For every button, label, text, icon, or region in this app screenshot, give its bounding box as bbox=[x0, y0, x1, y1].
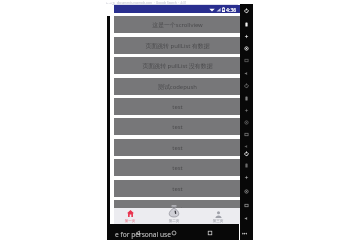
button[interactable]: Rotate left bbox=[244, 46, 249, 51]
staticText: test bbox=[172, 144, 183, 152]
button[interactable]: Snapshots bbox=[244, 175, 249, 180]
button[interactable]: test bbox=[114, 200, 240, 208]
staticText: 测试codepush bbox=[158, 83, 197, 91]
button[interactable]: 第一页 bbox=[120, 204, 140, 224]
staticText: 页面跳转 pullList 有数据 bbox=[145, 42, 210, 50]
button[interactable]: Fold bbox=[244, 120, 249, 125]
button[interactable]: Volume down bbox=[244, 34, 249, 39]
button[interactable]: Volume up bbox=[244, 22, 249, 27]
button[interactable]: Back bbox=[244, 83, 249, 88]
button[interactable]: Settings bbox=[244, 163, 249, 168]
button[interactable]: 这是一个scrollview bbox=[114, 16, 240, 33]
staticText: test bbox=[172, 185, 183, 193]
button[interactable]: Home bbox=[170, 229, 178, 237]
staticText: 4:36 bbox=[226, 6, 237, 13]
staticText: 第二页 bbox=[166, 219, 182, 223]
button[interactable]: 页面跳转 pullList 有数据 bbox=[114, 37, 240, 54]
staticText: 第三页 bbox=[210, 219, 226, 223]
staticText: ••• bbox=[242, 231, 248, 237]
button[interactable]: Screenshot bbox=[244, 132, 249, 137]
staticText: test bbox=[172, 103, 183, 111]
button[interactable]: 页面跳转 pullList 没有数据 bbox=[114, 57, 240, 74]
staticText: test bbox=[172, 205, 183, 208]
button[interactable]: Extended controls bbox=[244, 216, 249, 221]
staticText: test bbox=[172, 123, 183, 131]
staticText: 第一页 bbox=[122, 219, 138, 223]
button[interactable]: 第三页 bbox=[208, 204, 228, 224]
button[interactable]: Record bbox=[244, 144, 249, 149]
button[interactable]: Rotate right bbox=[244, 58, 249, 63]
button[interactable]: Virtual sensors bbox=[244, 189, 249, 194]
button[interactable]: Bug report bbox=[244, 203, 249, 208]
button[interactable]: 第二页 bbox=[164, 204, 184, 224]
staticText: 这是一个scrollview bbox=[152, 21, 203, 29]
button[interactable]: Overview bbox=[244, 108, 249, 113]
button[interactable]: Volume bbox=[244, 151, 249, 156]
button[interactable]: 测试codepush bbox=[114, 78, 240, 95]
button[interactable]: Home bbox=[244, 96, 249, 101]
button[interactable]: Back bbox=[134, 229, 142, 237]
button[interactable]: Zoom bbox=[244, 71, 249, 76]
button[interactable]: Recents bbox=[206, 229, 214, 237]
staticText: ← → ↻ documents.example.com · Google Sea… bbox=[106, 1, 187, 5]
staticText: 页面跳转 pullList 没有数据 bbox=[142, 62, 213, 70]
button[interactable]: Power bbox=[244, 8, 249, 13]
staticText: e for personal use bbox=[115, 230, 171, 239]
staticText: test bbox=[172, 164, 183, 172]
